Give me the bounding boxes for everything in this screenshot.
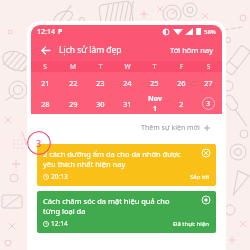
staticText: 2 cách dưỡng ẩm da cho da nhờn được: [43, 149, 181, 159]
button[interactable]: Thêm sự kiện mới: [139, 121, 212, 135]
staticText: 12:14: [51, 219, 68, 228]
button[interactable]: Done: [202, 196, 210, 204]
button[interactable]: 3: [195, 93, 222, 114]
staticText: 28: [41, 99, 50, 109]
staticText: Lịch sử làm đẹp: [59, 44, 122, 56]
button[interactable]: 24: [114, 72, 141, 93]
staticText: W: [114, 62, 141, 71]
button[interactable]: 2: [168, 93, 195, 114]
staticText: S: [195, 62, 222, 71]
button[interactable]: Back: [38, 43, 52, 57]
button[interactable]: 2 cách dưỡng ẩm da cho da nhờn được: [37, 144, 216, 186]
button[interactable]: 23: [87, 72, 114, 93]
staticText: 3: [36, 137, 42, 149]
staticText: 27: [204, 78, 213, 88]
staticText: Nov: [148, 94, 162, 104]
staticText: 12:14: [37, 27, 55, 37]
staticText: từng loại da: [43, 206, 86, 216]
button[interactable]: Selected day 3: [27, 131, 51, 155]
staticText: 25: [150, 78, 159, 88]
button[interactable]: Remove: [202, 149, 210, 157]
button[interactable]: Nov: [141, 93, 168, 114]
staticText: 58%: [204, 28, 216, 36]
button[interactable]: 25: [141, 72, 168, 93]
staticText: Sắp tới: [190, 173, 210, 181]
staticText: 21: [41, 78, 50, 88]
staticText: 3: [206, 99, 211, 109]
staticText: Đã thực hiện: [173, 220, 210, 228]
staticText: F: [168, 62, 195, 71]
staticText: T: [141, 62, 168, 71]
button[interactable]: Tới hôm nay: [168, 43, 215, 57]
button[interactable]: 22: [59, 72, 87, 93]
staticText: 2: [179, 99, 184, 109]
staticText: Thêm sự kiện mới: [141, 123, 200, 133]
staticText: 24: [123, 78, 132, 88]
staticText: 26: [177, 78, 186, 88]
button[interactable]: 28: [31, 93, 59, 114]
staticText: 29: [69, 99, 78, 109]
button[interactable]: 26: [168, 72, 195, 93]
staticText: 20:13: [51, 172, 68, 181]
staticText: 23: [96, 78, 105, 88]
staticText: P: [58, 27, 63, 37]
button[interactable]: 31: [114, 93, 141, 114]
staticText: M: [59, 62, 87, 71]
button[interactable]: 27: [195, 72, 222, 93]
button[interactable]: 21: [31, 72, 59, 93]
staticText: yêu thích nhất hiện nay: [43, 159, 126, 169]
button[interactable]: 29: [59, 93, 87, 114]
button[interactable]: Cách chăm sóc da mặt hiệu quả cho: [37, 191, 216, 233]
staticText: 1: [153, 104, 158, 114]
staticText: 31: [123, 99, 132, 109]
staticText: 30: [96, 99, 105, 109]
staticText: Cách chăm sóc da mặt hiệu quả cho: [43, 196, 170, 206]
staticText: S: [31, 62, 59, 71]
staticText: 22: [69, 78, 78, 88]
staticText: T: [87, 62, 114, 71]
staticText: Tới hôm nay: [170, 45, 213, 55]
button[interactable]: 30: [87, 93, 114, 114]
